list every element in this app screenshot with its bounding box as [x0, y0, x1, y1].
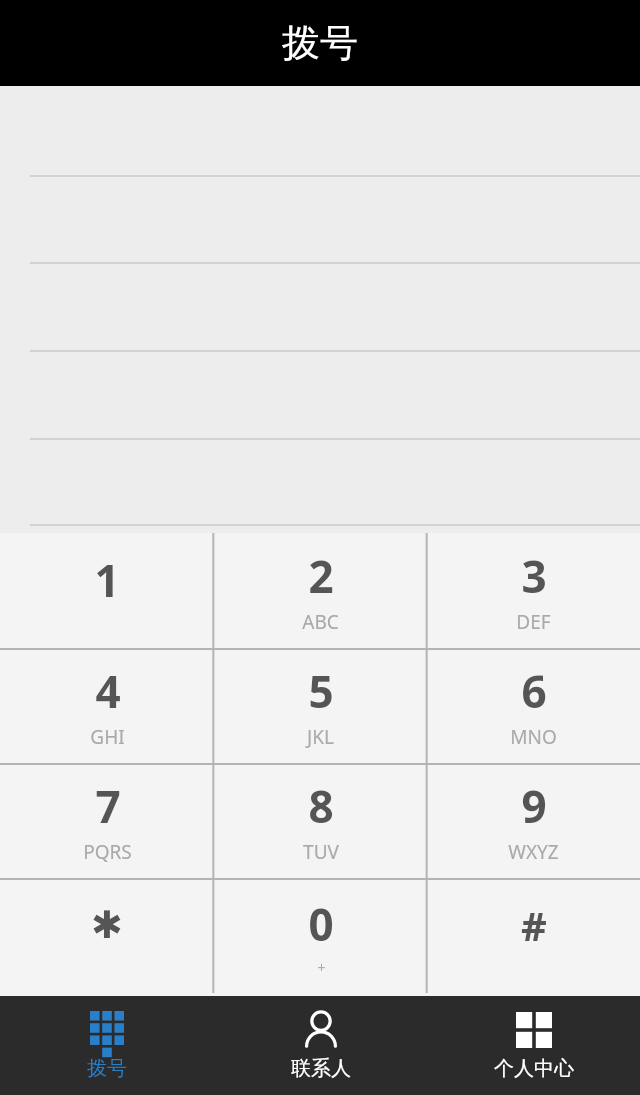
button[interactable]: 1 [0, 533, 214, 648]
staticText: ✱ [91, 903, 123, 947]
staticText: PQRS [83, 839, 132, 865]
staticText: WXYZ [508, 839, 559, 865]
staticText: DEF [516, 609, 551, 635]
staticText: 5 [308, 661, 334, 721]
button[interactable]: 6 [427, 648, 640, 763]
staticText: 9 [521, 776, 547, 836]
staticText: 7 [95, 776, 121, 836]
staticText: 8 [308, 776, 334, 836]
button[interactable]: 9 [427, 763, 640, 878]
staticText: MNO [510, 724, 557, 750]
button[interactable]: 8 [214, 763, 427, 878]
button[interactable]: 5 [214, 648, 427, 763]
staticText: 0 [308, 894, 334, 954]
staticText: + [317, 958, 326, 977]
staticText: 联系人 [291, 1056, 351, 1081]
button[interactable]: # [427, 878, 640, 993]
staticText: ABC [302, 609, 339, 635]
staticText: # [521, 898, 547, 952]
button[interactable]: ✱ [0, 878, 214, 993]
button[interactable]: 0 [214, 878, 427, 993]
staticText: JKL [307, 724, 334, 750]
staticText: 1 [94, 550, 120, 610]
button[interactable]: 3 [427, 533, 640, 648]
button[interactable]: 2 [214, 533, 427, 648]
staticText: GHI [90, 724, 125, 750]
staticText: 4 [95, 661, 121, 721]
staticText: TUV [303, 839, 339, 865]
button[interactable]: 个人中心 [427, 996, 640, 1095]
staticText: 拨号 [282, 19, 358, 67]
button[interactable]: 联系人 [214, 996, 427, 1095]
staticText: 拨号 [87, 1056, 127, 1081]
staticText: 3 [521, 546, 547, 606]
button[interactable]: 拨号 [0, 996, 214, 1095]
staticText: 2 [308, 546, 334, 606]
button[interactable]: 4 [0, 648, 214, 763]
staticText: 6 [521, 661, 547, 721]
button[interactable]: 7 [0, 763, 214, 878]
staticText: 个人中心 [494, 1056, 574, 1081]
